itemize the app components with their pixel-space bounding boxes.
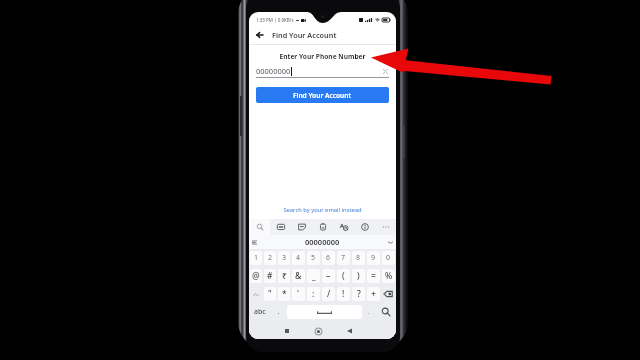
button[interactable]: 1 [250,251,262,265]
button[interactable]: Comma [271,303,287,321]
staticText: ₹ [282,270,287,282]
button[interactable]: =\< [250,287,262,301]
staticText: – [326,270,331,282]
staticText: ( [342,270,345,282]
button[interactable]: : [307,287,320,301]
button[interactable]: 2 [264,251,276,265]
staticText: 6 [326,253,331,263]
staticText: Find Your Account [293,91,352,100]
staticText: 5 [311,253,316,263]
button[interactable]: 9 [367,251,380,265]
button[interactable]: Search [249,219,270,235]
button[interactable]: Translate [333,219,354,235]
button[interactable]: ₹ [278,269,290,283]
button[interactable]: Clipboard [312,219,333,235]
button[interactable]: ! [337,287,350,301]
staticText: , [278,308,280,316]
button[interactable]: 0 [382,251,395,265]
button[interactable]: Clear text [382,68,389,75]
button[interactable]: # [264,269,276,283]
staticText: 1:33 PM | 0.9KB/s [256,17,294,23]
button[interactable]: + [367,287,380,301]
button[interactable]: = [367,269,380,283]
staticText: " [268,288,272,300]
button[interactable]: 5 [307,251,320,265]
staticText: ' [297,288,300,300]
staticText: & [295,270,302,282]
button[interactable]: – [322,269,335,283]
button[interactable]: Find Your Account [256,87,389,103]
button[interactable]: abc [249,303,271,321]
staticText: @ [252,270,260,282]
button[interactable]: & [292,269,305,283]
staticText: 4 [296,253,301,263]
button[interactable]: @ [250,269,262,283]
button[interactable]: _ [307,269,320,283]
staticText: _ [312,270,316,282]
staticText: Enter Your Phone Number [249,52,396,61]
staticText: 7 [341,253,346,263]
staticText: ) [357,270,360,282]
button[interactable]: Space [287,305,362,319]
staticText: abc [254,307,266,317]
staticText: ! [342,288,345,300]
button[interactable]: Back [342,324,356,338]
staticText: 9 [371,253,376,263]
staticText: # [267,270,273,282]
button[interactable]: 7 [337,251,350,265]
staticText: 00000000 [256,66,291,76]
button[interactable]: Info [354,219,375,235]
button[interactable]: Back [253,29,265,41]
staticText: 3 [282,253,287,263]
button[interactable]: 3 [278,251,290,265]
button[interactable]: Back [249,26,396,44]
staticText: = [371,270,376,282]
staticText: . [368,308,370,316]
staticText: 2 [268,253,273,263]
button[interactable]: Search by your email instead [249,206,396,214]
button[interactable]: More options [375,219,396,235]
staticText: 1 [254,253,259,263]
button[interactable]: Search [376,303,396,321]
button[interactable]: Home [311,324,325,338]
staticText: % [385,270,393,282]
staticText: * [282,288,287,300]
staticText: Find Your Account [272,30,337,40]
button[interactable]: % [382,269,395,283]
staticText: 0 [386,253,391,263]
staticText: ? [357,288,361,300]
button[interactable]: GIF [270,219,291,235]
staticText: 8 [356,253,361,263]
button[interactable]: Recent apps [280,324,294,338]
staticText: / [327,288,331,300]
button[interactable]: ? [352,287,365,301]
button[interactable]: ( [337,269,350,283]
button[interactable]: " [264,287,276,301]
staticText: : [312,288,315,300]
button[interactable]: 6 [322,251,335,265]
button[interactable]: * [278,287,290,301]
button[interactable]: 4 [292,251,305,265]
button[interactable] [382,287,395,301]
button[interactable]: ) [352,269,365,283]
button[interactable]: ' [292,287,305,301]
staticText: + [371,288,376,300]
button[interactable]: 8 [352,251,365,265]
button[interactable]: / [322,287,335,301]
staticText: 00000000 [305,237,340,247]
staticText: =\< [253,292,260,297]
button[interactable]: Sticker [291,219,312,235]
